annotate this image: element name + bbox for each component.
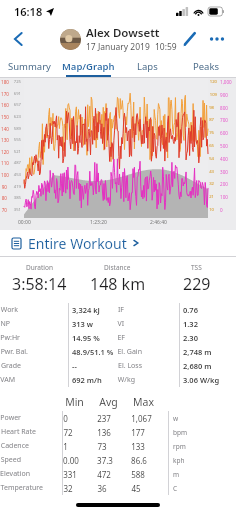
staticText: Distance bbox=[104, 263, 131, 272]
staticText: 725 bbox=[13, 79, 21, 85]
staticText: 1 bbox=[63, 441, 68, 452]
staticText: 419 bbox=[13, 184, 21, 190]
button[interactable]: Back bbox=[4, 24, 34, 54]
staticText: El. Gain bbox=[117, 347, 142, 357]
staticText: 180 bbox=[1, 79, 9, 85]
staticText: C bbox=[173, 484, 178, 493]
staticText: 133 bbox=[131, 441, 145, 452]
staticText: 54 bbox=[209, 156, 214, 162]
staticText: 48.9/51.1 % bbox=[72, 347, 114, 357]
staticText: 300 bbox=[220, 169, 228, 175]
staticText: 32 bbox=[63, 483, 73, 494]
staticText: 120 bbox=[1, 149, 9, 155]
staticText: Avg bbox=[99, 395, 118, 409]
staticText: Pwr. Bal. bbox=[0, 347, 28, 357]
staticText: 589 bbox=[13, 126, 21, 132]
staticText: 200 bbox=[220, 181, 228, 187]
staticText: 00:00 bbox=[18, 219, 31, 226]
staticText: 120 bbox=[209, 79, 217, 85]
staticText: 500 bbox=[220, 143, 228, 149]
staticText: 37.3 bbox=[97, 455, 113, 466]
staticText: 2:46:40 bbox=[150, 219, 167, 226]
staticText: 800 bbox=[220, 105, 228, 111]
staticText: 43 bbox=[209, 169, 214, 175]
staticText: 86.6 bbox=[131, 455, 147, 466]
staticText: m bbox=[173, 470, 180, 479]
staticText: TSS bbox=[191, 263, 202, 272]
staticText: 623 bbox=[13, 114, 21, 120]
staticText: Cadence bbox=[0, 441, 29, 451]
staticText: 453 bbox=[13, 172, 21, 178]
staticText: Min bbox=[65, 395, 84, 409]
button[interactable]: Summary bbox=[0, 55, 59, 78]
staticText: -- bbox=[72, 361, 77, 371]
staticText: 700 bbox=[220, 117, 228, 123]
button[interactable]: Map/Graph bbox=[59, 55, 118, 78]
staticText: 136 bbox=[97, 427, 111, 438]
staticText: Work bbox=[0, 305, 18, 315]
button[interactable]: Peaks bbox=[177, 55, 236, 78]
staticText: Duration bbox=[26, 263, 53, 272]
staticText: 110 bbox=[1, 160, 9, 166]
staticText: W/kg bbox=[117, 375, 135, 385]
staticText: rpm bbox=[173, 442, 186, 451]
staticText: Temperature bbox=[0, 483, 43, 493]
staticText: 588 bbox=[131, 469, 145, 480]
staticText: 237 bbox=[97, 413, 111, 424]
staticText: VAM bbox=[0, 375, 15, 385]
staticText: 17 January 2019 bbox=[86, 41, 150, 53]
staticText: 385 bbox=[13, 195, 21, 201]
staticText: 109 bbox=[209, 92, 217, 98]
staticText: 1,067 bbox=[131, 413, 152, 424]
staticText: 10:59 bbox=[155, 41, 177, 53]
staticText: 0 bbox=[220, 207, 223, 213]
staticText: Elevation bbox=[0, 469, 30, 479]
staticText: 313 w bbox=[72, 319, 94, 329]
staticText: 160 bbox=[1, 102, 9, 108]
staticText: Power bbox=[0, 413, 21, 423]
staticText: 65 bbox=[209, 143, 214, 149]
button[interactable]: Edit bbox=[176, 26, 202, 52]
staticText: 600 bbox=[220, 130, 228, 136]
staticText: 70 bbox=[1, 207, 7, 213]
staticText: 472 bbox=[97, 469, 111, 480]
staticText: 32 bbox=[209, 181, 214, 187]
staticText: Speed bbox=[0, 455, 21, 465]
staticText: 657 bbox=[13, 102, 21, 108]
staticText: 691 bbox=[13, 91, 21, 97]
staticText: 555 bbox=[13, 137, 21, 143]
staticText: 2,680 m bbox=[183, 361, 212, 371]
staticText: Entire Workout bbox=[28, 234, 127, 253]
staticText: 98 bbox=[209, 105, 214, 111]
staticText: 229 bbox=[183, 273, 211, 295]
staticText: 3:58:14 bbox=[12, 273, 67, 295]
staticText: 1,000 bbox=[220, 79, 232, 85]
button[interactable]: Entire Workout bbox=[0, 230, 236, 256]
staticText: 1:23:20 bbox=[90, 219, 107, 226]
staticText: 900 bbox=[220, 92, 228, 98]
staticText: 21 bbox=[209, 194, 214, 200]
staticText: 76 bbox=[209, 130, 214, 136]
staticText: 2,748 m bbox=[183, 347, 212, 357]
button[interactable]: More options bbox=[204, 26, 230, 52]
button[interactable]: Laps bbox=[118, 55, 177, 78]
staticText: 150 bbox=[1, 114, 9, 120]
staticText: 45 bbox=[131, 483, 141, 494]
staticText: 90 bbox=[1, 184, 7, 190]
staticText: bpm bbox=[173, 428, 188, 437]
staticText: Peaks bbox=[193, 60, 220, 73]
staticText: 140 bbox=[1, 126, 9, 132]
staticText: VI bbox=[117, 319, 124, 329]
staticText: NP bbox=[0, 319, 10, 329]
staticText: 16:18 bbox=[14, 4, 43, 19]
staticText: Max bbox=[133, 395, 154, 409]
staticText: 331 bbox=[63, 469, 77, 480]
staticText: 73 bbox=[97, 441, 107, 452]
staticText: 72 bbox=[63, 427, 73, 438]
staticText: EF bbox=[117, 333, 125, 343]
staticText: 100 bbox=[1, 172, 9, 178]
staticText: Alex Dowsett bbox=[86, 25, 160, 41]
staticText: IF bbox=[117, 305, 124, 315]
staticText: 692 m/h bbox=[72, 375, 102, 385]
staticText: w bbox=[173, 414, 179, 423]
